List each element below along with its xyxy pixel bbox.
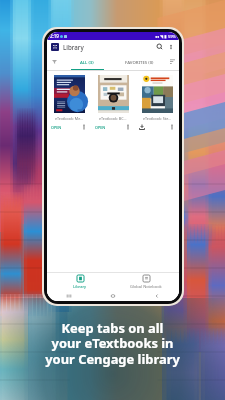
button[interactable]: eTextbook: Me... <box>47 75 91 130</box>
button[interactable]: Options <box>81 124 87 130</box>
button[interactable]: Cengage <box>51 43 59 51</box>
button[interactable]: Search <box>155 42 165 52</box>
staticText: eTextbook: Me... <box>55 116 84 121</box>
staticText: ◂◂ ◥ ▮ <box>155 34 167 39</box>
staticText: 59% <box>168 34 176 39</box>
staticText: eTextbook: Ste... <box>143 116 172 121</box>
staticText: FAVORITES (0) <box>125 59 154 65</box>
button[interactable]: Download <box>139 124 145 130</box>
button[interactable]: Global Notebook <box>113 273 179 290</box>
staticText: 2:19 <box>50 33 59 39</box>
staticText: ALL (3) <box>80 59 94 65</box>
button[interactable]: More options <box>167 43 175 51</box>
button[interactable]: ALL (3) <box>61 53 113 70</box>
button[interactable]: Sort <box>165 53 179 70</box>
staticText: eTextbook: BC... <box>99 116 127 121</box>
button[interactable]: Options <box>125 124 131 130</box>
button[interactable]: OPEN <box>95 125 106 130</box>
button[interactable]: eTextbook: BC... <box>91 75 135 130</box>
staticText: Keep tabs on all your eTextbooks in your… <box>0 319 225 368</box>
button[interactable]: Library <box>47 273 113 290</box>
button[interactable]: Filter <box>47 53 61 70</box>
staticText: Library <box>73 284 87 289</box>
button[interactable]: OPEN <box>51 125 62 130</box>
button[interactable]: eTextbook: Ste... <box>135 75 179 130</box>
button[interactable]: FAVORITES (0) <box>113 53 165 70</box>
staticText: Global Notebook <box>130 284 162 289</box>
staticText: Library <box>63 43 84 51</box>
button[interactable]: Options <box>169 124 175 130</box>
